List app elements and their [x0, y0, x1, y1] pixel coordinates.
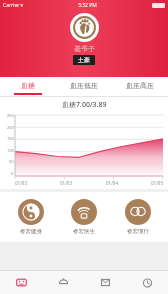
staticText: 3:32 PM	[78, 2, 97, 9]
staticText: 01/04	[106, 180, 118, 186]
staticText: 睿宏医生	[73, 228, 95, 235]
button[interactable]: 用户头像	[70, 13, 99, 42]
button[interactable]: 首页	[0, 271, 42, 294]
staticText: Carrier ▾	[3, 2, 24, 9]
button[interactable]: 睿宏理疗	[115, 199, 161, 235]
staticText: 血糖7.00/3.89	[62, 100, 107, 110]
staticText: 100	[7, 148, 14, 153]
staticText: 250	[7, 113, 14, 118]
staticText: 01/03	[60, 180, 72, 186]
staticText: 50	[9, 159, 14, 164]
staticText: 老爷子	[74, 44, 95, 53]
button[interactable]: 消息	[84, 271, 126, 294]
button[interactable]: 血糖	[0, 77, 56, 96]
staticText: 血压高压	[126, 81, 154, 90]
button[interactable]: 我的	[126, 271, 168, 294]
staticText: 01/03	[15, 180, 27, 186]
staticText: 0	[11, 171, 14, 176]
button[interactable]: 服务	[42, 271, 84, 294]
button[interactable]: 土豪	[73, 55, 95, 65]
button[interactable]: 睿宏医生	[61, 199, 107, 235]
button[interactable]: 睿宏健身	[8, 199, 54, 235]
button[interactable]: 血压高压	[112, 77, 168, 96]
staticText: 睿宏理疗	[127, 228, 149, 235]
staticText: 150	[7, 136, 14, 141]
staticText: 睿宏健身	[20, 228, 42, 235]
staticText: 血糖	[21, 81, 35, 90]
staticText: 土豪	[78, 56, 90, 64]
staticText: 01/05	[151, 180, 163, 186]
staticText: 200	[7, 125, 14, 130]
button[interactable]: 血压低压	[56, 77, 112, 96]
staticText: 血压低压	[70, 81, 98, 90]
